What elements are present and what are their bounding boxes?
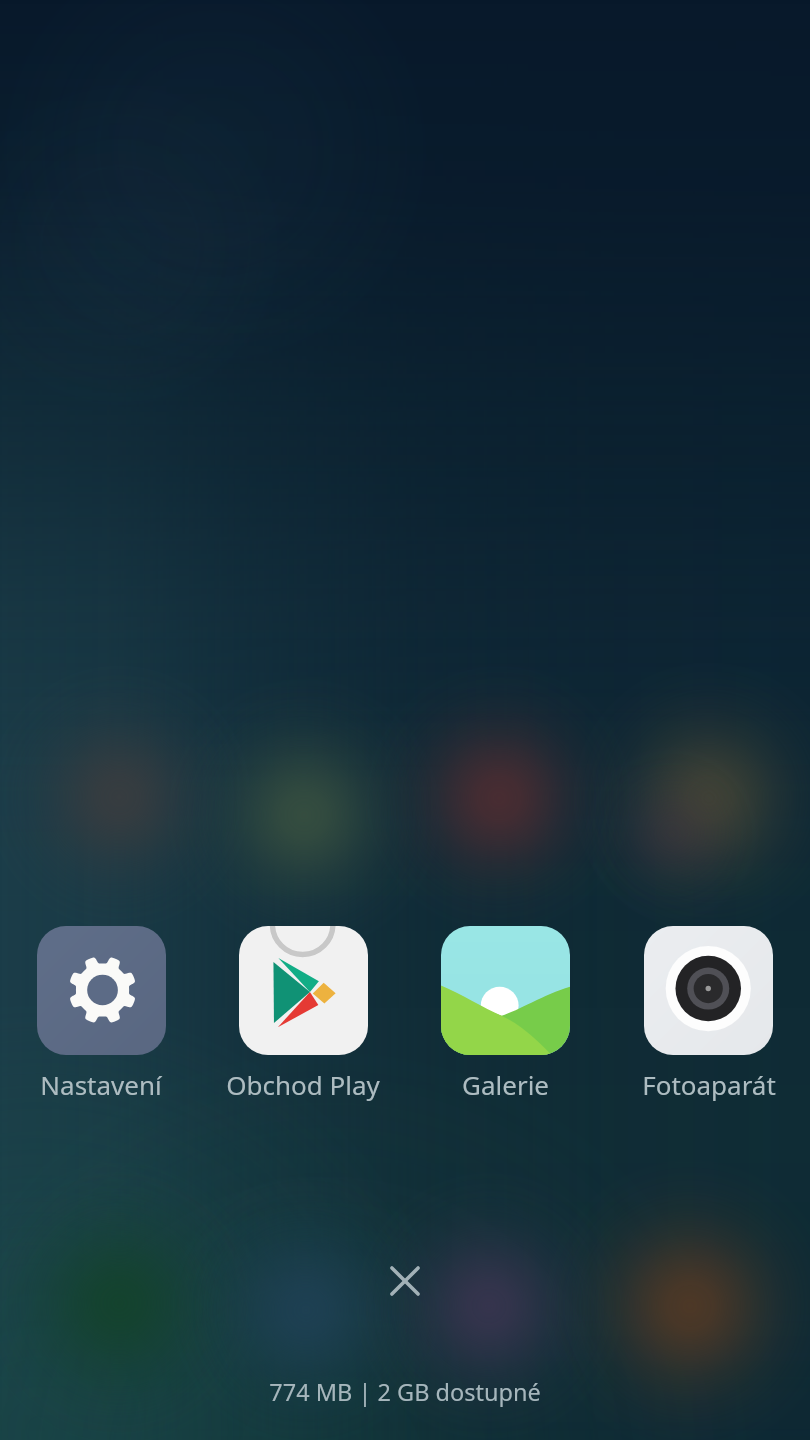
staticText: Nastavení (40, 1067, 162, 1102)
button[interactable]: Close all apps (361, 1237, 449, 1325)
button[interactable]: Nastavení (0, 926, 202, 1102)
staticText: Galerie (462, 1067, 549, 1102)
button[interactable]: Obchod Play (202, 926, 404, 1102)
staticText: 774 MB | 2 GB dostupné (0, 1376, 810, 1408)
button[interactable]: Galerie (404, 926, 607, 1102)
staticText: Obchod Play (226, 1067, 380, 1102)
staticText: Fotoaparát (642, 1067, 776, 1102)
button[interactable]: Fotoaparát (607, 926, 810, 1102)
